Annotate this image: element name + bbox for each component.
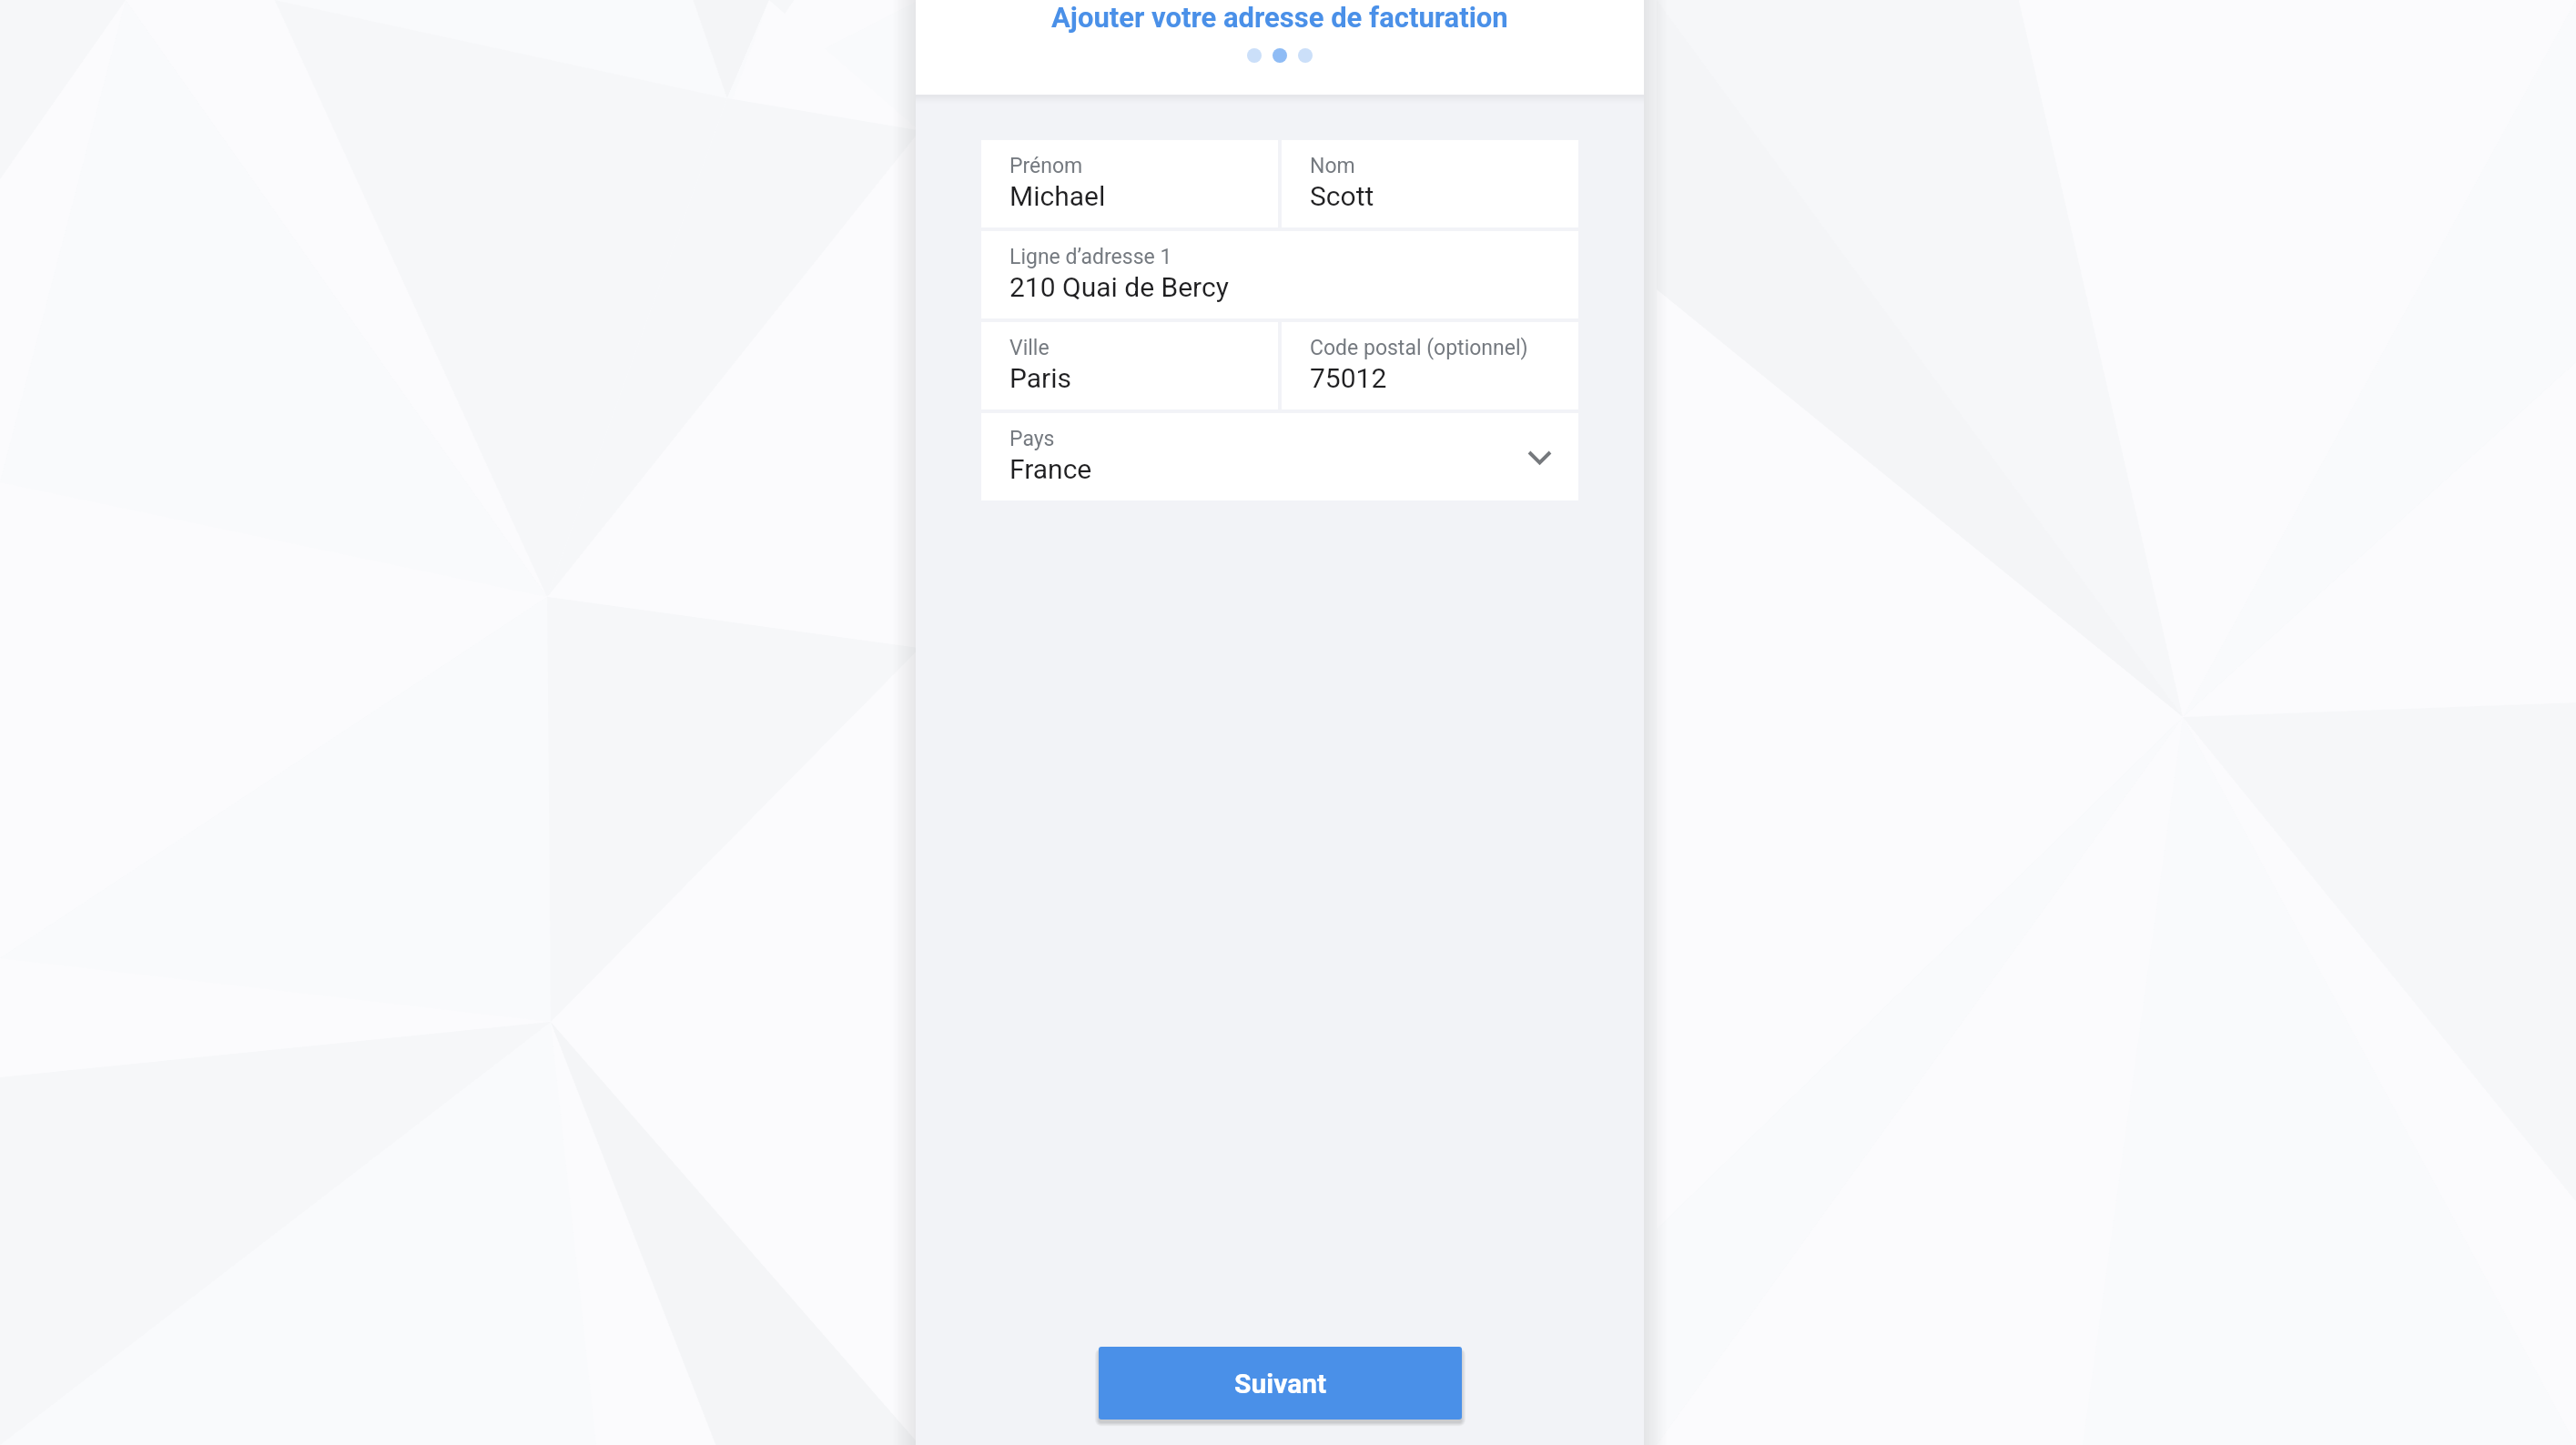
button[interactable]: Suivant [1099,1347,1462,1420]
button[interactable]: Ligne d’adresse 1, 210 Quai de Bercy [981,231,1578,318]
button[interactable]: Ville, Paris [981,322,1278,409]
staticText: 210 Quai de Bercy [1009,271,1229,303]
staticText: Ajouter votre adresse de facturation [1051,1,1508,34]
button[interactable]: Pays, France [981,413,1578,500]
button[interactable]: Nom, Scott [1282,140,1578,227]
staticText: Paris [1009,362,1072,394]
staticText: France [1009,453,1092,485]
staticText: Scott [1310,180,1374,212]
staticText: Suivant [1234,1368,1327,1400]
staticText: Michael [1009,180,1106,212]
staticText: Nom [1310,154,1355,178]
staticText: Ligne d’adresse 1 [1009,245,1172,269]
staticText: Ville [1009,336,1050,360]
staticText: Code postal (optionnel) [1310,336,1528,360]
staticText: Pays [1009,427,1055,451]
button[interactable]: Prénom, Michael [981,140,1278,227]
button[interactable]: Code postal (optionnel), 75012 [1282,322,1578,409]
staticText: Prénom [1009,154,1083,178]
staticText: 75012 [1310,362,1387,394]
